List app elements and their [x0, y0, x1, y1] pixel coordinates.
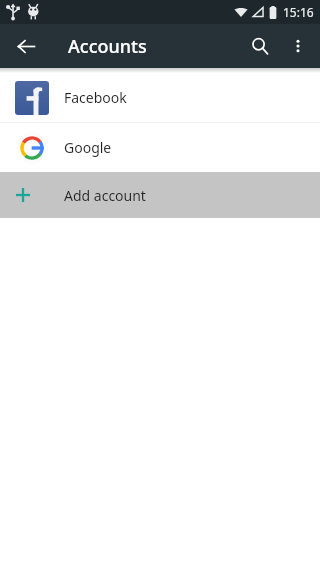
staticText: Add account	[64, 186, 146, 205]
staticText: 15:16	[283, 4, 314, 20]
button[interactable]: Facebook	[0, 73, 320, 122]
button[interactable]: Add account	[0, 172, 320, 218]
button[interactable]: Google	[0, 123, 320, 172]
staticText: Google	[64, 138, 112, 157]
button[interactable]: Navigate up	[8, 28, 44, 64]
button[interactable]: Search	[240, 26, 280, 66]
staticText: Facebook	[64, 88, 127, 107]
button[interactable]: More options	[280, 28, 316, 64]
staticText: Accounts	[68, 34, 147, 59]
